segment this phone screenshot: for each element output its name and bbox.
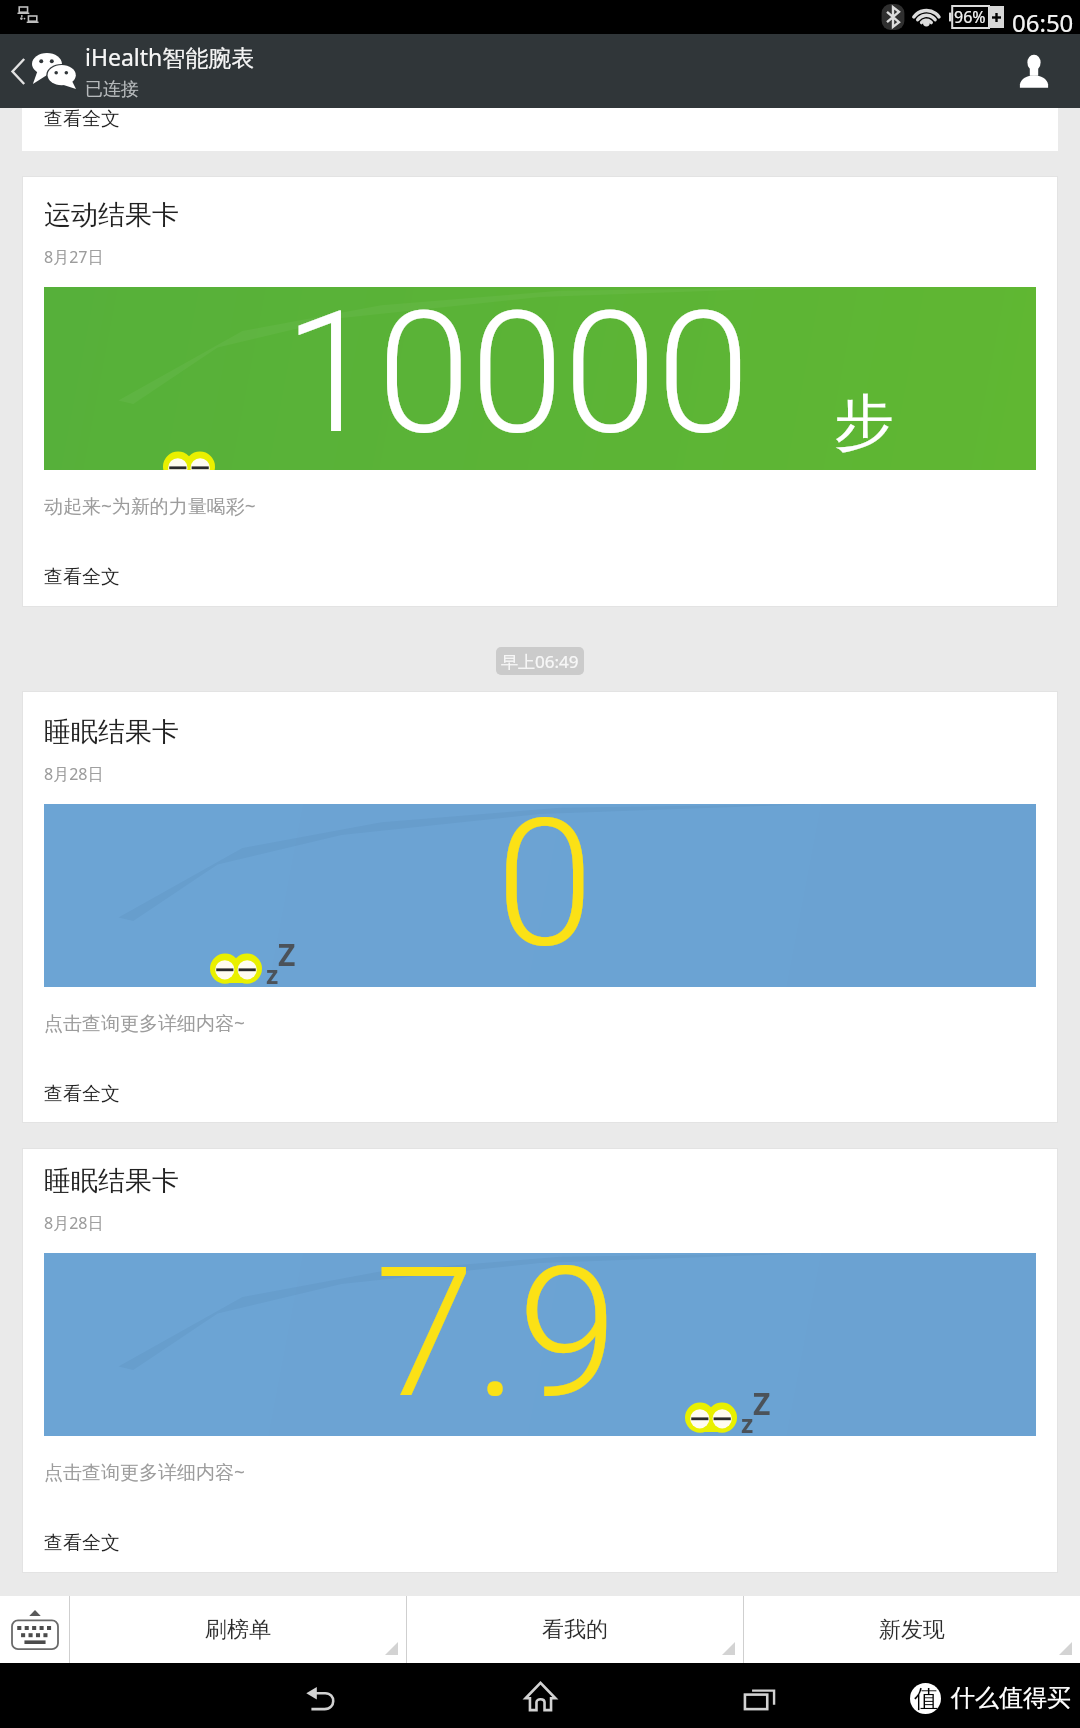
staticText: 8月28日: [44, 1212, 104, 1234]
staticText: 查看全文: [44, 565, 120, 589]
staticText: 0: [496, 804, 594, 964]
staticText: 运动结果卡: [44, 198, 179, 232]
staticText: 睡眠结果卡: [44, 1164, 179, 1198]
staticText: z: [741, 1406, 754, 1436]
staticText: 8月27日: [44, 246, 104, 268]
staticText: Z: [753, 1383, 771, 1424]
button[interactable]: Back: [248, 1663, 394, 1728]
staticText: 7.9: [375, 1253, 618, 1411]
staticText: 点击查询更多详细内容~: [44, 1459, 245, 1485]
staticText: 看我的: [542, 1616, 608, 1644]
button[interactable]: 睡眠结果卡: [22, 691, 1058, 1123]
staticText: 动起来~为新的力量喝彩~: [44, 493, 256, 519]
staticText: 步: [834, 385, 894, 461]
staticText: 96%: [954, 6, 986, 28]
staticText: iHealth智能腕表: [85, 41, 255, 72]
staticText: 8月28日: [44, 763, 104, 785]
button[interactable]: 查看全文: [22, 108, 1058, 151]
staticText: 值: [914, 1684, 938, 1714]
button[interactable]: 看我的: [407, 1596, 743, 1663]
button[interactable]: Home: [467, 1663, 613, 1728]
staticText: Z: [278, 934, 296, 975]
staticText: 查看全文: [44, 1531, 120, 1555]
staticText: 06:50: [1012, 6, 1074, 39]
button[interactable]: 睡眠结果卡: [22, 1148, 1058, 1573]
staticText: 早上06:49: [501, 650, 579, 673]
staticText: z: [266, 957, 279, 987]
button[interactable]: Back: [0, 34, 36, 108]
staticText: 10000: [284, 287, 750, 458]
button[interactable]: 运动结果卡: [22, 176, 1058, 607]
button[interactable]: Contact: [988, 34, 1080, 108]
staticText: 点击查询更多详细内容~: [44, 1010, 245, 1036]
staticText: 什么值得买: [951, 1683, 1071, 1713]
staticText: 查看全文: [44, 107, 120, 131]
button[interactable]: Recents: [686, 1663, 832, 1728]
staticText: 新发现: [879, 1616, 945, 1644]
staticText: 已连接: [85, 78, 139, 101]
staticText: 刷榜单: [205, 1616, 271, 1644]
button[interactable]: 刷榜单: [70, 1596, 406, 1663]
staticText: 睡眠结果卡: [44, 715, 179, 749]
button[interactable]: 新发现: [744, 1596, 1080, 1663]
button[interactable]: Keyboard: [0, 1596, 69, 1663]
staticText: 查看全文: [44, 1082, 120, 1106]
